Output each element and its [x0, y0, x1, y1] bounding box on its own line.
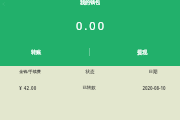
button[interactable]: 转账 — [18, 44, 54, 60]
staticText: 状态 — [55, 69, 125, 75]
staticText: ¥ 42.00 — [0, 85, 63, 91]
button[interactable]: 提现 — [124, 44, 160, 60]
staticText: 转账 — [31, 49, 41, 55]
staticText: 提现 — [137, 49, 147, 55]
staticText: 2020-08-10 — [119, 85, 180, 91]
staticText: 日期 — [118, 69, 180, 75]
staticText: 我的钱包 — [0, 0, 180, 5]
staticText: 已转款 — [54, 85, 124, 91]
button[interactable]: ¥ 42.00 — [0, 80, 180, 94]
staticText: 金钱/手续费 — [0, 69, 65, 74]
staticText: 0.00 — [1, 18, 180, 33]
